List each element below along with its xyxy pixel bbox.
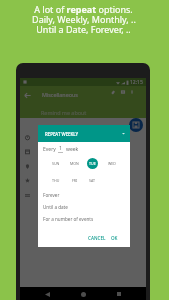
staticText: For a number of events <box>43 216 94 222</box>
staticText: SAT <box>89 178 96 183</box>
staticText: week <box>66 146 79 153</box>
button[interactable]: SUN <box>50 158 61 169</box>
staticText: 12:15 <box>130 79 143 86</box>
staticText: Until a date <box>43 204 68 210</box>
staticText: Forever <box>43 192 60 198</box>
staticText: Until a Date, Forever, .. <box>36 23 131 35</box>
staticText: OK <box>111 235 118 241</box>
staticText: Daily, Weekly, Monthly, .. <box>32 13 136 25</box>
staticText: A lot of repeat options. <box>34 3 133 15</box>
button[interactable]: Time <box>23 133 32 142</box>
button[interactable]: Add photo <box>117 86 129 98</box>
button[interactable]: Place <box>23 162 32 171</box>
button[interactable]: Attach file <box>107 86 119 98</box>
button[interactable]: Home <box>78 289 88 299</box>
staticText: MON <box>70 161 79 166</box>
staticText: TUE <box>89 161 96 166</box>
button[interactable]: WED <box>106 158 117 169</box>
button[interactable]: Forever <box>40 189 102 201</box>
staticText: WED <box>108 161 116 166</box>
staticText: THU <box>52 178 60 183</box>
button[interactable]: THU <box>50 175 61 186</box>
staticText: CANCEL <box>88 235 106 241</box>
staticText: 1 <box>59 145 62 152</box>
button[interactable]: Recent apps <box>114 289 124 299</box>
button[interactable]: Save reminder <box>129 118 143 132</box>
button[interactable]: FRI <box>69 175 80 186</box>
button[interactable]: SAT <box>87 175 98 186</box>
staticText: Every <box>43 146 56 153</box>
button[interactable]: More options <box>126 86 138 98</box>
button[interactable]: CANCEL <box>85 232 109 244</box>
button[interactable]: OK <box>108 232 121 244</box>
button[interactable]: TUE <box>87 158 98 169</box>
button[interactable]: Repeat type <box>120 130 127 137</box>
button[interactable]: Date <box>23 147 32 156</box>
staticText: Remind me about <box>41 109 87 116</box>
button[interactable]: Until a date <box>40 201 102 213</box>
button[interactable]: Favourite <box>23 176 32 185</box>
button[interactable]: For a number of events <box>40 213 102 225</box>
button[interactable]: Navigate up <box>21 89 33 101</box>
staticText: FRI <box>72 178 78 183</box>
staticText: REPEAT WEEKLY <box>45 131 79 137</box>
button[interactable]: Back <box>42 289 52 299</box>
staticText: SUN <box>52 161 60 166</box>
button[interactable]: 1 <box>58 145 63 153</box>
button[interactable]: List <box>23 191 32 200</box>
staticText: Miscellaneous <box>42 91 78 98</box>
button[interactable]: MON <box>69 158 80 169</box>
